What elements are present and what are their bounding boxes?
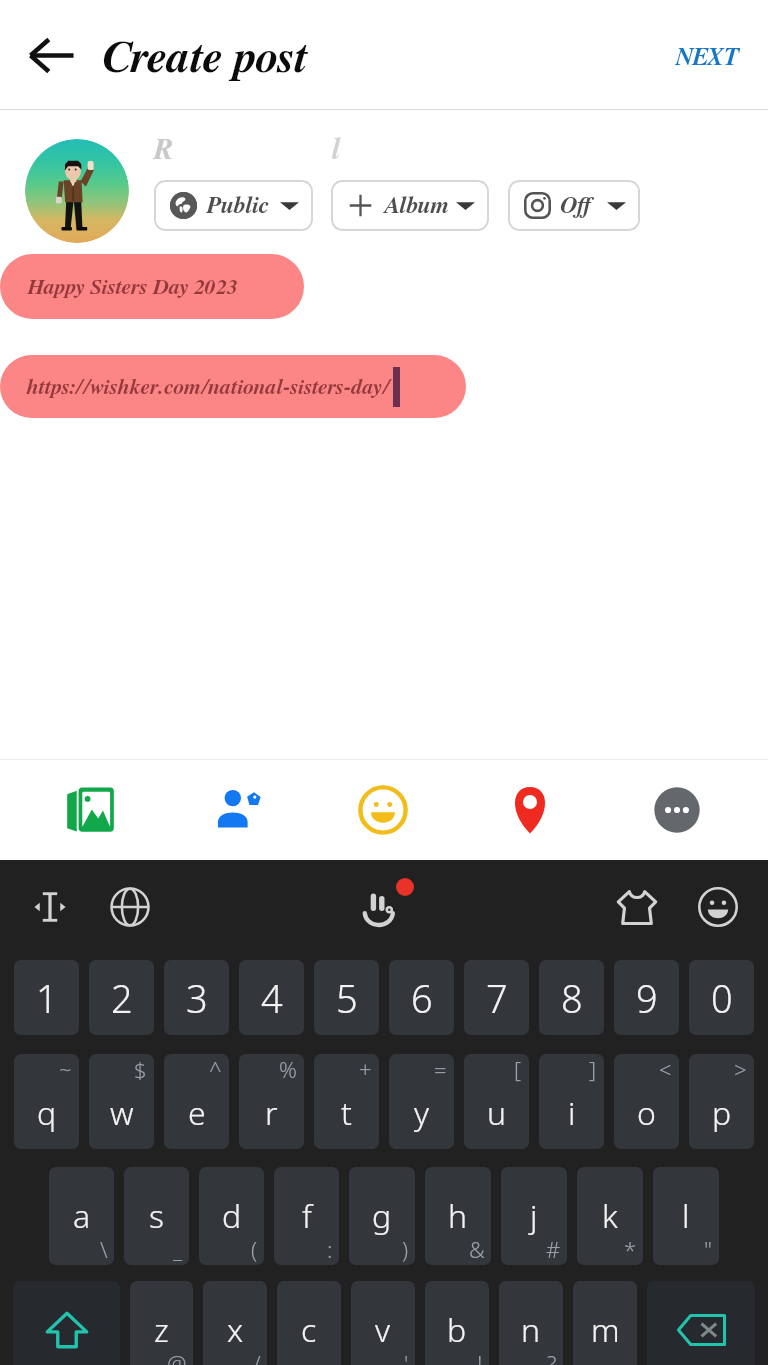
button[interactable]: a [49,1167,114,1265]
staticText: Create post [102,35,307,81]
staticText: 1 [36,972,58,1024]
button[interactable]: Backspace [647,1281,755,1365]
staticText: 0 [711,972,733,1024]
button[interactable]: 7 [464,960,529,1035]
staticText: y [414,1091,430,1135]
button[interactable]: Cursor control [22,879,78,935]
button[interactable]: Public [154,180,313,231]
button[interactable]: 1 [14,960,79,1035]
button[interactable]: 6 [389,960,454,1035]
button[interactable]: 2 [89,960,154,1035]
staticText: _ [173,1234,183,1264]
button[interactable]: w [89,1054,154,1149]
button[interactable]: Keyboard themes [609,879,665,935]
staticText: Off [560,194,594,218]
staticText: ] [589,1054,597,1084]
staticText: ) [402,1234,409,1264]
button[interactable]: l [653,1167,719,1265]
staticText: * [624,1234,637,1264]
button[interactable]: 0 [689,960,754,1035]
button[interactable]: More options [603,760,750,859]
staticText: ( [251,1234,258,1264]
button[interactable]: 3 [164,960,229,1035]
button[interactable]: v [351,1281,415,1365]
staticText: j [530,1194,538,1238]
button[interactable]: c [277,1281,341,1365]
button[interactable]: s [124,1167,189,1265]
button[interactable]: 8 [539,960,604,1035]
button[interactable]: Tag people [163,760,309,859]
staticText: 5 [336,972,358,1024]
staticText: / [253,1348,261,1365]
button[interactable]: r [239,1054,304,1149]
button[interactable]: NEXT [665,26,748,88]
button[interactable]: 9 [614,960,679,1035]
staticText: " [704,1234,713,1264]
staticText: ' [404,1348,409,1365]
button[interactable]: m [573,1281,637,1365]
button[interactable]: y [389,1054,454,1149]
button[interactable]: Check in [456,760,603,859]
staticText: 2 [111,972,133,1024]
button[interactable]: g [349,1167,415,1265]
button[interactable]: Add photo [17,760,163,859]
button[interactable]: Change language [102,879,158,935]
staticText: = [434,1054,447,1084]
staticText: < [659,1054,672,1084]
button[interactable]: u [464,1054,529,1149]
button[interactable]: Feeling or activity [309,760,456,859]
button[interactable]: o [614,1054,679,1149]
button[interactable]: 4 [239,960,304,1035]
staticText: @ [167,1348,187,1365]
button[interactable]: x [203,1281,267,1365]
button[interactable]: t [314,1054,379,1149]
staticText: l [682,1194,690,1238]
staticText: # [546,1234,561,1264]
button[interactable]: i [539,1054,604,1149]
staticText: w [110,1091,134,1135]
button[interactable]: h [425,1167,491,1265]
staticText: v [375,1308,391,1352]
staticText: x [227,1308,244,1352]
button[interactable]: d [199,1167,264,1265]
button[interactable]: Emoji [690,879,746,935]
staticText: z [154,1308,169,1352]
button[interactable]: 5 [314,960,379,1035]
button[interactable]: e [164,1054,229,1149]
button[interactable] [25,139,129,243]
button[interactable]: Clipboard [352,873,420,941]
staticText: u [487,1091,507,1135]
staticText: Album [383,194,449,218]
staticText: : [327,1234,333,1264]
staticText: n [521,1308,541,1352]
staticText: t [341,1091,352,1135]
button[interactable]: Album [331,180,489,231]
staticText: & [469,1234,485,1264]
button[interactable]: z [130,1281,193,1365]
button[interactable]: q [14,1054,79,1149]
staticText: p [712,1091,732,1135]
button[interactable]: b [425,1281,489,1365]
button[interactable]: n [499,1281,563,1365]
staticText: c [301,1308,317,1352]
staticText: + [359,1054,372,1084]
button[interactable]: j [501,1167,567,1265]
staticText: ? [547,1348,557,1365]
staticText: [ [514,1054,522,1084]
staticText: e [188,1091,206,1135]
staticText: 8 [561,972,583,1024]
button[interactable]: Back [18,22,84,88]
staticText: d [222,1194,242,1238]
staticText: NEXT [675,45,738,70]
button[interactable]: p [689,1054,754,1149]
button[interactable]: k [577,1167,643,1265]
button[interactable]: f [274,1167,339,1265]
button[interactable]: Shift [13,1281,120,1365]
staticText: l [331,136,340,165]
staticText: https://wishker.com/national-sisters-day… [26,376,389,398]
staticText: ~ [59,1054,72,1084]
staticText: 6 [411,972,433,1024]
button[interactable]: Off [508,180,640,231]
